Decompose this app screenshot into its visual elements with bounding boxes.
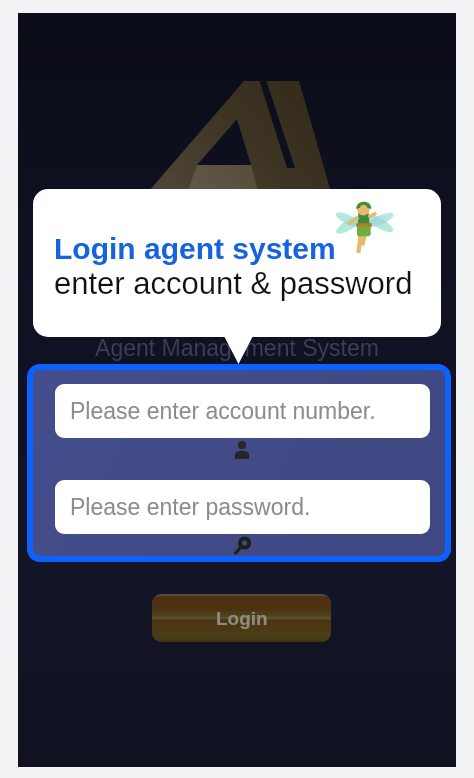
other: Account xyxy=(234,441,250,459)
staticText: Agent Management System xyxy=(18,335,456,361)
button[interactable]: Login xyxy=(152,594,331,642)
staticText: Please enter account number. xyxy=(70,398,376,424)
staticText: enter account & password xyxy=(54,266,413,301)
button[interactable]: Please enter password. xyxy=(55,480,430,534)
other: Password xyxy=(231,537,251,556)
staticText: Login xyxy=(216,608,268,629)
staticText: Please enter password. xyxy=(70,494,311,520)
staticText: Login agent system xyxy=(54,232,336,266)
button[interactable]: Please enter account number. xyxy=(55,384,430,438)
